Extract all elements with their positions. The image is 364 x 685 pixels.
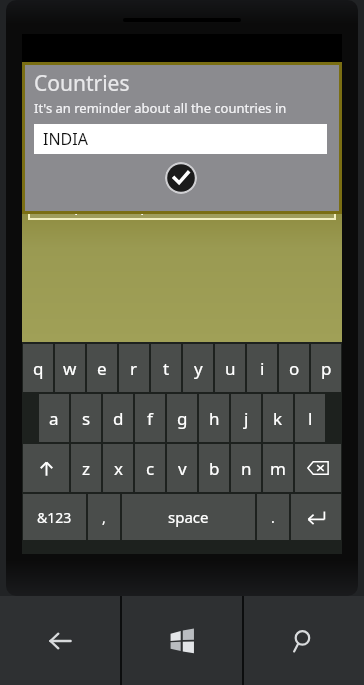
staticText: y xyxy=(194,357,203,380)
button[interactable]: Search xyxy=(244,596,364,685)
staticText: i xyxy=(260,357,265,380)
button[interactable]: INDIA xyxy=(34,124,327,154)
button[interactable] xyxy=(23,444,69,492)
button[interactable]: q xyxy=(23,344,53,392)
button[interactable]: Input Prompt with Mobile Number xyxy=(28,190,336,220)
staticText: space xyxy=(168,507,209,527)
button[interactable]: Confirm xyxy=(165,162,197,194)
staticText: q xyxy=(33,357,44,380)
staticText: h xyxy=(209,407,220,430)
button[interactable]: y xyxy=(183,344,213,392)
staticText: z xyxy=(82,457,90,480)
button[interactable]: o xyxy=(279,344,309,392)
button[interactable]: g xyxy=(167,394,197,442)
button[interactable]: n xyxy=(231,444,261,492)
button[interactable]: x xyxy=(103,444,133,492)
button[interactable]: j xyxy=(231,394,261,442)
button[interactable] xyxy=(291,494,341,540)
button[interactable]: t xyxy=(151,344,181,392)
button[interactable]: f xyxy=(135,394,165,442)
staticText: g xyxy=(177,407,188,430)
staticText: w xyxy=(63,357,77,380)
staticText: , xyxy=(102,508,106,527)
staticText: f xyxy=(147,407,153,430)
staticText: a xyxy=(49,407,59,430)
staticText: Countries xyxy=(34,69,130,98)
staticText: j xyxy=(244,407,249,430)
staticText: r xyxy=(130,357,138,380)
staticText: l xyxy=(308,407,313,430)
button[interactable]: , xyxy=(88,494,120,540)
button[interactable]: i xyxy=(247,344,277,392)
button[interactable]: d xyxy=(103,394,133,442)
staticText: m xyxy=(270,457,286,480)
button[interactable]: a xyxy=(39,394,69,442)
button[interactable]: m xyxy=(263,444,293,492)
staticText: INDIA xyxy=(43,128,88,150)
button[interactable]: u xyxy=(215,344,245,392)
button[interactable]: r xyxy=(119,344,149,392)
button[interactable]: z xyxy=(71,444,101,492)
button[interactable] xyxy=(295,444,341,492)
button[interactable]: w xyxy=(55,344,85,392)
button[interactable]: b xyxy=(199,444,229,492)
staticText: It's an reminder about all the countries… xyxy=(34,99,339,117)
staticText: &123 xyxy=(37,508,72,527)
staticText: u xyxy=(225,357,236,380)
button[interactable]: k xyxy=(263,394,293,442)
staticText: x xyxy=(114,457,123,480)
button[interactable]: h xyxy=(199,394,229,442)
button[interactable]: Back xyxy=(0,596,120,685)
staticText: p xyxy=(321,357,332,380)
staticText: s xyxy=(82,407,91,430)
staticText: e xyxy=(97,357,107,380)
staticText: n xyxy=(241,457,252,480)
button[interactable]: v xyxy=(167,444,197,492)
button[interactable]: space xyxy=(122,494,255,540)
button[interactable]: Start xyxy=(122,596,242,685)
button[interactable]: p xyxy=(311,344,341,392)
staticText: o xyxy=(289,357,300,380)
staticText: Input Prompt with Mobile Number xyxy=(60,195,304,215)
staticText: v xyxy=(178,457,187,480)
staticText: t xyxy=(163,357,170,380)
staticText: d xyxy=(113,407,124,430)
button[interactable]: . xyxy=(257,494,289,540)
button[interactable]: e xyxy=(87,344,117,392)
button[interactable]: &123 xyxy=(23,494,86,540)
staticText: b xyxy=(209,457,220,480)
staticText: . xyxy=(271,508,275,527)
button[interactable]: c xyxy=(135,444,165,492)
button[interactable]: l xyxy=(295,394,325,442)
staticText: k xyxy=(273,407,283,430)
button[interactable]: s xyxy=(71,394,101,442)
staticText: c xyxy=(146,457,155,480)
